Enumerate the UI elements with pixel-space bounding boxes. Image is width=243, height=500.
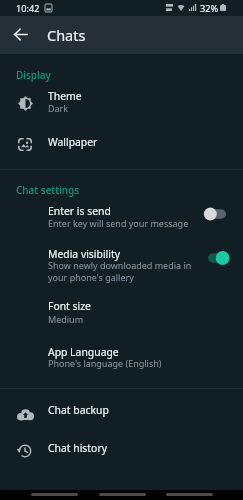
staticText: Phone's language (English) — [48, 357, 162, 369]
button[interactable]: Chat history — [0, 436, 243, 468]
button[interactable]: Media visibility — [0, 243, 243, 291]
staticText: 10:42 — [16, 2, 40, 15]
button[interactable]: Enter is send — [0, 200, 243, 236]
button[interactable]: Recent apps — [166, 493, 213, 496]
button[interactable]: Chat backup — [0, 398, 243, 430]
staticText: App Language — [48, 345, 119, 359]
button[interactable]: Media visibility — [196, 244, 236, 272]
button[interactable]: Back — [5, 19, 36, 50]
staticText: Chat backup — [48, 403, 109, 417]
staticText: Enter key will send your message — [48, 217, 189, 229]
staticText: your phone's gallery — [48, 271, 134, 283]
button[interactable]: App Language — [0, 342, 243, 378]
button[interactable]: Enter is send — [196, 200, 236, 228]
staticText: 32% — [200, 2, 219, 15]
button[interactable]: Back — [31, 493, 78, 496]
button[interactable]: Wallpaper — [0, 128, 243, 164]
staticText: Wallpaper — [48, 135, 98, 149]
staticText: Display — [16, 68, 51, 82]
staticText: Chat settings — [16, 183, 80, 197]
button[interactable]: Home — [99, 493, 146, 496]
staticText: Media visibility — [48, 247, 120, 261]
staticText: Dark — [48, 102, 69, 114]
button[interactable]: Font size — [0, 296, 243, 332]
staticText: Chat history — [48, 441, 107, 455]
staticText: Medium — [48, 313, 84, 325]
staticText: Show newly downloaded media in — [48, 259, 192, 271]
staticText: Theme — [48, 89, 82, 103]
staticText: Enter is send — [48, 204, 111, 218]
staticText: Chats — [47, 25, 86, 45]
button[interactable]: Theme — [0, 86, 243, 128]
staticText: Font size — [48, 299, 91, 313]
